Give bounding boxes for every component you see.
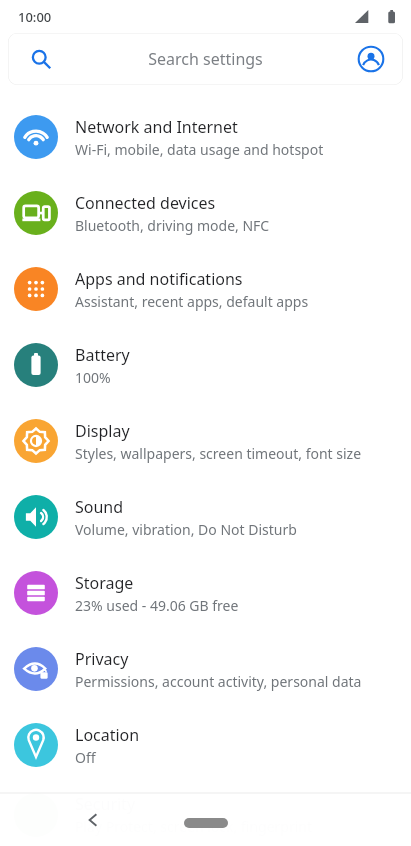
button[interactable]: Account (357, 45, 385, 73)
button[interactable]: Network and Internet (0, 99, 411, 175)
button[interactable]: Storage (0, 555, 411, 631)
staticText: Display (75, 420, 130, 442)
button[interactable]: Sound (0, 479, 411, 555)
button[interactable]: Security (0, 783, 411, 846)
other: Search (30, 48, 52, 70)
staticText: Storage (75, 572, 134, 594)
staticText: Location (75, 724, 140, 746)
staticText: Volume, vibration, Do Not Disturb (75, 520, 297, 539)
staticText: 23% used - 49.06 GB free (75, 596, 239, 615)
staticText: Battery (75, 344, 130, 366)
staticText: Off (75, 748, 96, 767)
staticText: Security (75, 793, 136, 815)
staticText: Apps and notifications (75, 268, 243, 290)
staticText: Privacy (75, 648, 129, 670)
staticText: Network and Internet (75, 116, 238, 138)
staticText: Assistant, recent apps, default apps (75, 292, 309, 311)
staticText: Styles, wallpapers, screen timeout, font… (75, 444, 362, 463)
button[interactable]: Location (0, 707, 411, 783)
staticText: Wi-Fi, mobile, data usage and hotspot (75, 140, 324, 159)
button[interactable]: Privacy (0, 631, 411, 707)
staticText: Permissions, account activity, personal … (75, 672, 362, 691)
button[interactable]: Connected devices (0, 175, 411, 251)
button[interactable]: Battery (0, 327, 411, 403)
button[interactable]: Apps and notifications (0, 251, 411, 327)
staticText: Bluetooth, driving mode, NFC (75, 216, 270, 235)
button[interactable]: Display (0, 403, 411, 479)
staticText: 10:00 (18, 8, 52, 26)
staticText: Connected devices (75, 192, 216, 214)
staticText: Play Protect, screen lock, fingerprint (75, 817, 313, 836)
staticText: Search settings (148, 48, 263, 70)
button[interactable]: Search (8, 33, 403, 85)
staticText: 100% (75, 368, 111, 387)
button[interactable]: Back (76, 803, 110, 837)
button[interactable]: Home (184, 818, 228, 828)
staticText: Sound (75, 496, 124, 518)
